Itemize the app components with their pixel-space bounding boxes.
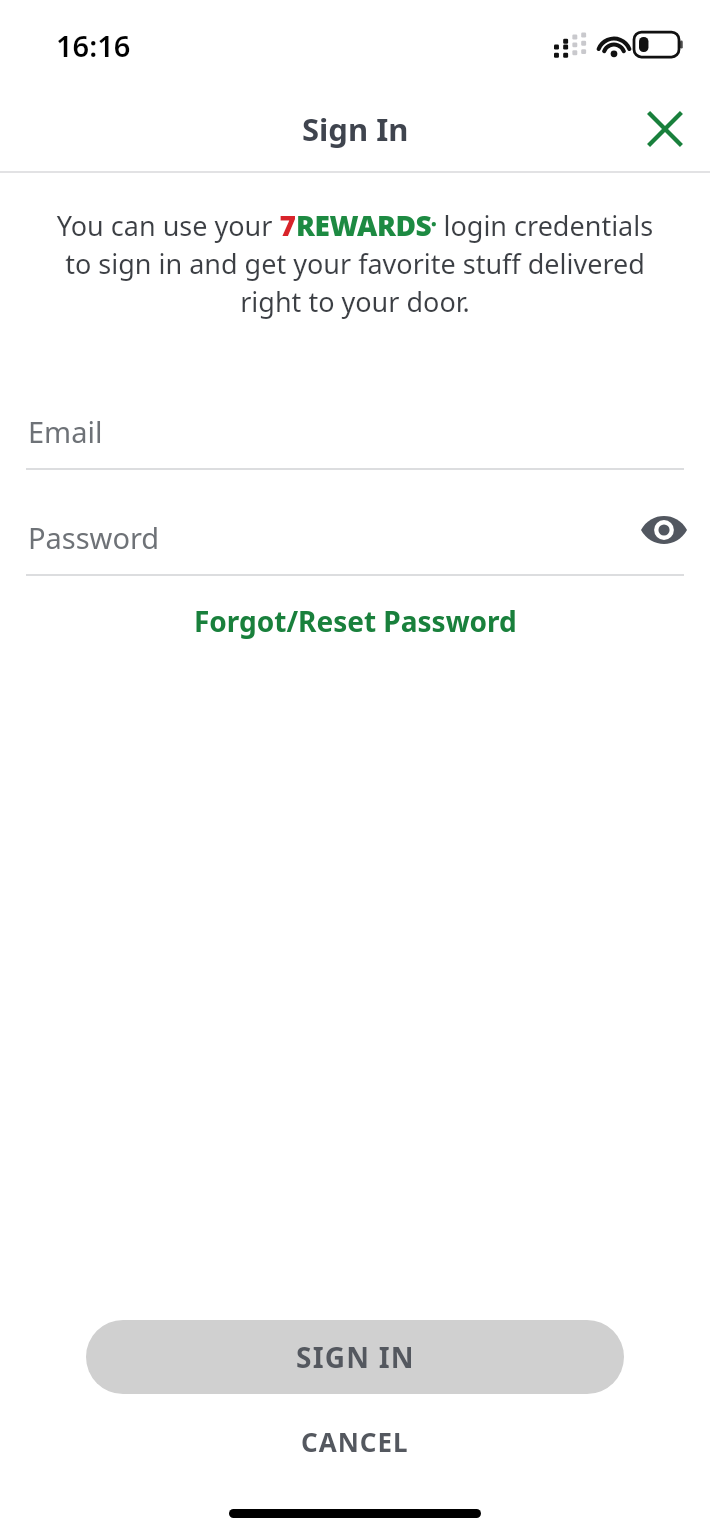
- button[interactable]: Email: [0, 386, 710, 470]
- button[interactable]: SIGN IN: [86, 1320, 624, 1394]
- staticText: Sign In: [302, 108, 409, 150]
- button[interactable]: Sign In: [302, 108, 409, 150]
- button[interactable]: Close: [634, 98, 696, 160]
- button[interactable]: Forgot/Reset Password: [176, 592, 535, 650]
- staticText: 16:16: [56, 26, 131, 65]
- staticText: Password: [28, 518, 160, 557]
- button[interactable]: CANCEL: [261, 1410, 449, 1473]
- staticText: Forgot/Reset Password: [194, 602, 517, 640]
- staticText: CANCEL: [301, 1424, 409, 1459]
- button[interactable]: [0, 492, 710, 574]
- staticText: You can use your 7REWARDS• login credent…: [56, 206, 654, 320]
- button[interactable]: Show password: [634, 500, 694, 560]
- staticText: SIGN IN: [296, 1338, 415, 1376]
- staticText: Email: [28, 412, 103, 451]
